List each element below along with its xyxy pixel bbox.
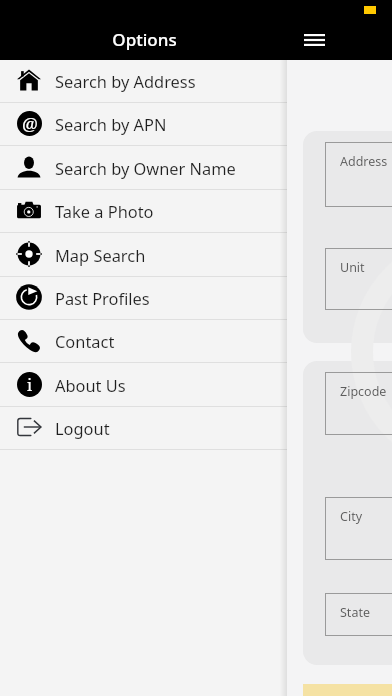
staticText: i — [27, 374, 33, 396]
staticText: Zipcode — [340, 383, 387, 400]
button[interactable]: Search by Owner Name — [0, 147, 287, 190]
button[interactable]: Search by Address — [0, 60, 287, 103]
staticText: Contact — [55, 330, 115, 352]
button[interactable]: Contact — [0, 320, 287, 363]
staticText: Logout — [55, 417, 110, 439]
button[interactable]: Logout — [0, 407, 287, 450]
staticText: Take a Photo — [55, 200, 154, 222]
staticText: @ — [22, 112, 38, 135]
staticText: State — [340, 604, 370, 621]
staticText: About Us — [55, 374, 126, 396]
staticText: City — [340, 508, 363, 525]
button[interactable]: Map Search — [0, 234, 287, 277]
staticText: Search by APN — [55, 113, 167, 135]
staticText: Options — [1, 28, 288, 51]
staticText: Map Search — [55, 244, 146, 266]
button[interactable]: Menu — [296, 22, 332, 58]
staticText: Address — [340, 153, 388, 170]
button[interactable]: i — [0, 364, 287, 407]
button[interactable]: Past Profiles — [0, 277, 287, 320]
button[interactable]: @ — [0, 103, 287, 146]
staticText: Search by Owner Name — [55, 157, 236, 179]
staticText: Search by Address — [55, 70, 196, 92]
staticText: Unit — [340, 259, 365, 276]
staticText: Past Profiles — [55, 287, 150, 309]
button[interactable]: Take a Photo — [0, 190, 287, 233]
